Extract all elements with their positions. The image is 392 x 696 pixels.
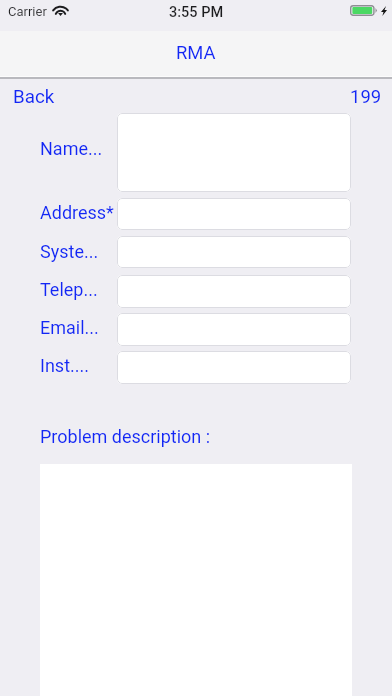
staticText: Address* xyxy=(40,202,114,223)
button[interactable] xyxy=(117,275,351,308)
staticText: Email... xyxy=(40,317,99,338)
button[interactable] xyxy=(117,113,351,192)
button[interactable]: 199 xyxy=(342,79,390,115)
staticText: Problem description : xyxy=(40,426,211,447)
staticText: RMA xyxy=(176,42,216,64)
button[interactable] xyxy=(117,236,351,268)
button[interactable] xyxy=(117,198,351,230)
staticText: Syste... xyxy=(40,241,99,262)
button[interactable] xyxy=(117,351,351,384)
staticText: Inst.... xyxy=(40,355,89,376)
staticText: Back xyxy=(13,86,55,108)
button[interactable] xyxy=(117,313,351,346)
staticText: Carrier xyxy=(8,4,47,19)
staticText: Telep... xyxy=(40,279,98,300)
staticText: Name... xyxy=(40,138,103,159)
staticText: 3:55 PM xyxy=(169,4,224,21)
button[interactable]: Back xyxy=(5,79,63,115)
staticText: 199 xyxy=(350,86,382,108)
